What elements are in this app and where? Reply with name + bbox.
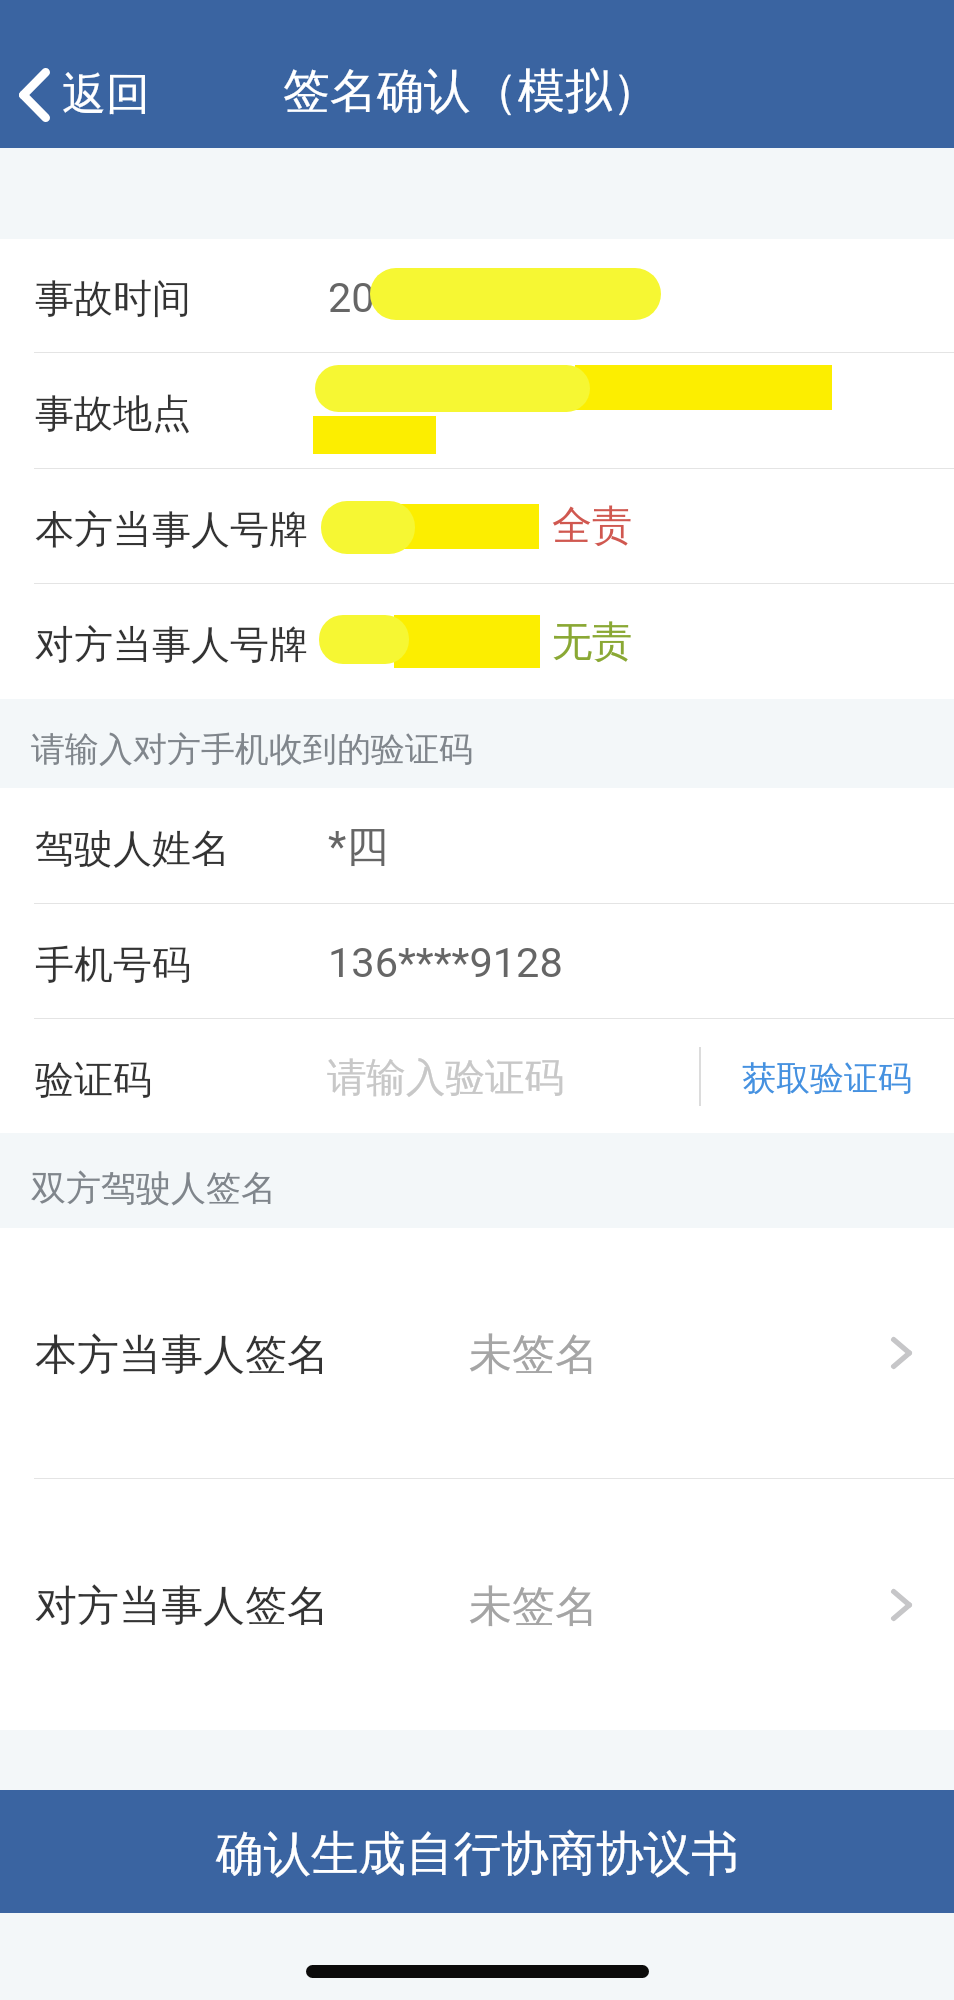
staticText: 未签名: [469, 1328, 598, 1382]
staticText: 请输入对方手机收到的验证码: [31, 728, 473, 771]
staticText: 事故地点: [35, 389, 191, 438]
staticText: 返回: [62, 67, 150, 122]
staticText: 驾驶人姓名: [35, 824, 230, 873]
button[interactable]: 对方当事人签名: [0, 1479, 954, 1730]
button[interactable]: 确认生成自行协商协议书: [0, 1790, 954, 1913]
staticText: 对方当事人签名: [35, 1580, 329, 1633]
staticText: 事故时间: [35, 274, 191, 323]
staticText: 对方当事人号牌: [35, 620, 308, 669]
staticText: 未签名: [469, 1580, 598, 1634]
staticText: 双方驾驶人签名: [31, 1166, 276, 1210]
staticText: 手机号码: [35, 940, 191, 989]
button[interactable]: 获取验证码: [733, 1049, 922, 1108]
staticText: 136****9128: [328, 938, 563, 987]
staticText: 签名确认（模拟）: [283, 62, 659, 121]
staticText: *四: [328, 820, 389, 874]
staticText: 验证码: [35, 1055, 152, 1104]
other: Open signature: [891, 1337, 912, 1369]
staticText: 本方当事人签名: [35, 1329, 329, 1382]
button[interactable]: 返回: [10, 63, 160, 126]
other: Open signature: [891, 1589, 912, 1621]
staticText: 本方当事人号牌: [35, 505, 308, 554]
button[interactable]: 本方当事人签名: [0, 1228, 954, 1478]
staticText: 全责: [552, 500, 632, 550]
staticText: 确认生成自行协商协议书: [216, 1824, 739, 1884]
staticText: 请输入验证码: [327, 1053, 564, 1103]
staticText: 无责: [552, 616, 632, 666]
staticText: 20: [328, 273, 375, 322]
